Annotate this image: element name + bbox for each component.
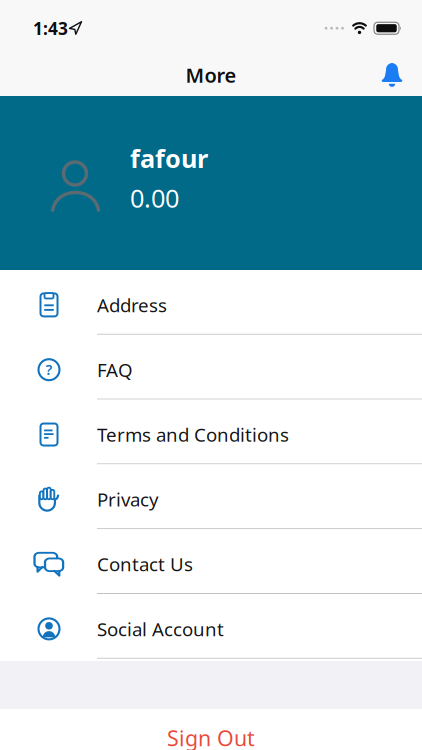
button[interactable]: Social Account xyxy=(0,594,422,659)
staticText: More xyxy=(185,62,236,88)
staticText: Address xyxy=(97,292,167,317)
button[interactable]: Terms and Conditions xyxy=(0,400,422,464)
staticText: Social Account xyxy=(97,616,224,641)
staticText: fafour xyxy=(130,141,208,175)
staticText: FAQ xyxy=(97,357,133,382)
staticText: 1:43 xyxy=(33,17,68,40)
button[interactable]: Notifications xyxy=(381,62,422,87)
button[interactable]: Sign Out xyxy=(0,709,422,750)
staticText: Contact Us xyxy=(97,552,193,576)
staticText: Terms and Conditions xyxy=(97,422,289,447)
button[interactable]: Address xyxy=(0,270,422,335)
staticText: 0.00 xyxy=(130,181,179,215)
staticText: ? xyxy=(45,359,52,379)
button[interactable]: ? xyxy=(0,335,422,400)
button[interactable]: Privacy xyxy=(0,464,422,529)
button[interactable]: Contact Us xyxy=(0,529,422,594)
staticText: Privacy xyxy=(97,487,159,512)
staticText: Sign Out xyxy=(167,724,255,750)
